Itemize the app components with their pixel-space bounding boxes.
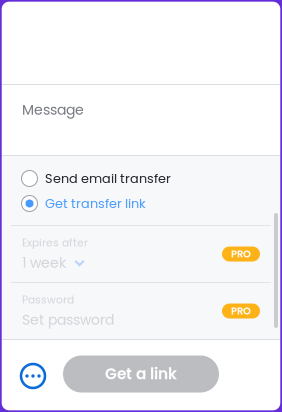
staticText: Expires after	[22, 235, 88, 250]
staticText: PRO	[231, 247, 251, 261]
button[interactable]: Password	[0, 283, 282, 339]
button[interactable]: Message	[0, 85, 282, 155]
staticText: Get a link	[105, 363, 177, 385]
button[interactable]: More options	[20, 363, 46, 389]
staticText: Message	[22, 100, 84, 120]
button[interactable]: Expires after	[0, 226, 282, 282]
staticText: Set password	[22, 310, 114, 330]
staticText: PRO	[231, 304, 251, 318]
staticText: Get transfer link	[45, 194, 146, 212]
button[interactable]: Get a link	[63, 355, 219, 396]
staticText: Send email transfer	[45, 169, 171, 187]
button[interactable]: Send email transfer	[0, 166, 282, 191]
button[interactable]: Get transfer link	[0, 191, 282, 216]
staticText: 1 week	[22, 253, 66, 273]
staticText: Password	[22, 292, 74, 307]
